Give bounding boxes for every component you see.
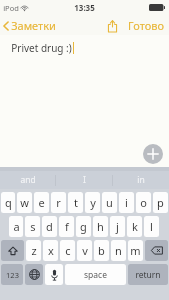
staticText: Privet drug :) [11, 41, 72, 55]
staticText: z [31, 243, 37, 258]
staticText: k [132, 219, 138, 234]
staticText: p [157, 195, 164, 210]
staticText: and [20, 174, 36, 186]
button[interactable]: e [34, 192, 49, 213]
button[interactable]: u [102, 192, 117, 213]
staticText: space [84, 269, 107, 281]
staticText: Готово [128, 18, 164, 33]
button[interactable]: r [51, 192, 66, 213]
staticText: q [5, 195, 12, 210]
staticText: j [116, 219, 119, 234]
button[interactable]: j [110, 216, 125, 237]
staticText: n [115, 243, 122, 258]
button[interactable]: x [43, 240, 58, 261]
staticText: d [46, 219, 53, 234]
staticText: l [150, 219, 153, 234]
button[interactable]: d [42, 216, 57, 237]
button[interactable]: Заметки [0, 16, 62, 35]
staticText: y [90, 195, 96, 210]
button[interactable]: Change keyboard [25, 264, 43, 285]
button[interactable]: v [77, 240, 92, 261]
staticText: m [130, 243, 141, 258]
button[interactable]: m [128, 240, 143, 261]
staticText: o [140, 195, 147, 210]
staticText: r [56, 195, 61, 210]
staticText: g [80, 219, 87, 234]
button[interactable]: in [113, 171, 169, 189]
button[interactable]: return [128, 264, 168, 285]
button[interactable]: n [111, 240, 126, 261]
staticText: x [48, 243, 54, 258]
staticText: e [38, 195, 45, 210]
button[interactable]: t [68, 192, 83, 213]
staticText: i [125, 195, 128, 210]
button[interactable]: o [136, 192, 151, 213]
staticText: I [83, 174, 86, 186]
button[interactable]: and [0, 171, 55, 189]
button[interactable]: k [127, 216, 142, 237]
staticText: 123 [6, 270, 19, 280]
staticText: Заметки [11, 18, 56, 33]
staticText: in [137, 174, 145, 186]
button[interactable]: w [17, 192, 32, 213]
staticText: f [65, 219, 69, 234]
button[interactable]: l [144, 216, 159, 237]
staticText: b [98, 243, 105, 258]
button[interactable]: Share [103, 18, 122, 34]
staticText: a [13, 219, 20, 234]
button[interactable]: 123 [1, 264, 23, 285]
button[interactable]: y [85, 192, 100, 213]
button[interactable]: g [76, 216, 91, 237]
button[interactable]: Готово [126, 16, 169, 35]
button[interactable]: z [26, 240, 41, 261]
button[interactable]: b [94, 240, 109, 261]
staticText: h [97, 219, 104, 234]
button[interactable]: c [60, 240, 75, 261]
button[interactable]: h [93, 216, 108, 237]
button[interactable]: I [56, 171, 112, 189]
staticText: 13:35 [74, 2, 95, 13]
staticText: t [74, 195, 78, 210]
staticText: v [82, 243, 88, 258]
button[interactable]: Dictate [45, 264, 63, 285]
button[interactable]: p [153, 192, 168, 213]
staticText: c [65, 243, 71, 258]
staticText: iPod [3, 3, 19, 13]
button[interactable]: space [65, 264, 126, 285]
button[interactable]: Shift [1, 240, 24, 261]
button[interactable]: q [1, 192, 15, 213]
staticText: s [30, 219, 36, 234]
button[interactable]: i [119, 192, 134, 213]
staticText: w [20, 195, 29, 210]
button[interactable]: s [25, 216, 40, 237]
staticText: u [106, 195, 113, 210]
button[interactable]: a [9, 216, 23, 237]
button[interactable]: f [59, 216, 74, 237]
staticText: return [135, 269, 161, 281]
button[interactable]: Add attachment [143, 144, 163, 164]
button[interactable]: Backspace [145, 240, 168, 261]
